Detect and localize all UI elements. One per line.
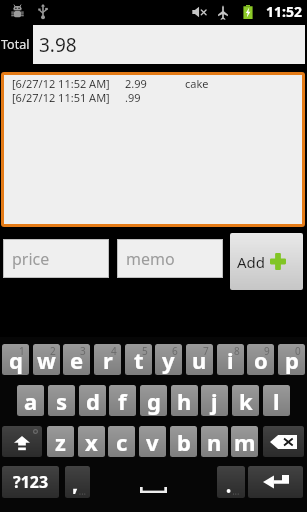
staticText: Add (237, 252, 266, 272)
staticText: b (177, 427, 191, 457)
button[interactable]: s (48, 385, 75, 416)
button[interactable]: o (247, 344, 274, 375)
staticText: 2.99 (125, 76, 147, 90)
staticText: 8 (234, 344, 240, 358)
staticText: 0 (295, 344, 301, 358)
button[interactable]: a (17, 385, 44, 416)
staticText: s (56, 386, 68, 416)
button[interactable]: z (47, 426, 74, 457)
staticText: h (177, 386, 192, 416)
button[interactable]: ?123 (2, 466, 59, 498)
staticText: q (9, 345, 23, 375)
staticText: v (146, 427, 159, 457)
button[interactable]: c (108, 426, 135, 457)
staticText: 4 (111, 344, 117, 358)
staticText: y (162, 345, 175, 375)
staticText: i (227, 345, 234, 375)
button[interactable]: Enter (248, 466, 303, 498)
button[interactable]: Add (230, 233, 303, 290)
staticText: u (192, 345, 207, 375)
staticText: l (273, 386, 280, 416)
staticText: r (103, 345, 113, 375)
button[interactable]: f (109, 385, 136, 416)
staticText: e (70, 345, 84, 375)
staticText: 3 (80, 344, 86, 358)
button[interactable]: u (186, 344, 213, 375)
staticText: 9 (264, 344, 270, 358)
button[interactable]: Shift (2, 426, 42, 457)
button[interactable]: Backspace (263, 426, 304, 457)
staticText: ?123 (13, 471, 49, 493)
staticText: 5 (142, 344, 148, 358)
staticText: 7 (203, 344, 209, 358)
button[interactable]: [6/27/12 11:52 AM] (4, 76, 302, 90)
button[interactable]: b (170, 426, 197, 457)
button[interactable]: y (155, 344, 182, 375)
staticText: j (211, 386, 218, 416)
staticText: memo (126, 248, 175, 270)
button[interactable]: k (232, 385, 259, 416)
button[interactable]: r (94, 344, 121, 375)
button[interactable]: Period (217, 466, 245, 498)
button[interactable]: i (217, 344, 244, 375)
button[interactable]: n (201, 426, 228, 457)
staticText: n (207, 427, 222, 457)
button[interactable]: p (278, 344, 305, 375)
button[interactable]: x (78, 426, 105, 457)
staticText: k (239, 386, 253, 416)
staticText: t (134, 345, 144, 375)
button[interactable]: Comma (65, 466, 90, 498)
button[interactable]: e (63, 344, 90, 375)
staticText: x (85, 427, 98, 457)
button[interactable]: 3.98 (33, 25, 305, 64)
staticText: c (116, 427, 128, 457)
button[interactable]: memo (118, 240, 222, 277)
staticText: g (147, 386, 161, 416)
staticText: [6/27/12 11:52 AM] (12, 76, 110, 90)
staticText: 2 (50, 344, 56, 358)
staticText: .99 (125, 90, 141, 104)
staticText: a (24, 386, 38, 416)
staticText: o (254, 345, 268, 375)
button[interactable]: t (125, 344, 152, 375)
button[interactable]: w (33, 344, 60, 375)
button[interactable]: l (263, 385, 290, 416)
staticText: 1 (19, 344, 25, 358)
staticText: m (234, 427, 256, 457)
button[interactable]: price (4, 240, 108, 277)
staticText: p (285, 345, 299, 375)
staticText: d (86, 386, 100, 416)
staticText: f (118, 386, 127, 416)
staticText: 3.98 (39, 32, 77, 58)
button[interactable]: [6/27/12 11:51 AM] (4, 90, 302, 104)
button[interactable]: j (201, 385, 228, 416)
staticText: price (12, 248, 50, 270)
button[interactable]: q (2, 344, 29, 375)
button[interactable]: v (139, 426, 166, 457)
button[interactable]: g (140, 385, 167, 416)
staticText: 11:52 (266, 2, 302, 21)
staticText: Total (1, 36, 30, 53)
staticText: z (55, 427, 66, 457)
button[interactable]: h (171, 385, 198, 416)
staticText: w (37, 345, 56, 375)
staticText: cake (185, 76, 209, 90)
staticText: [6/27/12 11:51 AM] (12, 90, 110, 104)
button[interactable]: d (79, 385, 106, 416)
button[interactable]: m (231, 426, 258, 457)
staticText: 6 (172, 344, 178, 358)
